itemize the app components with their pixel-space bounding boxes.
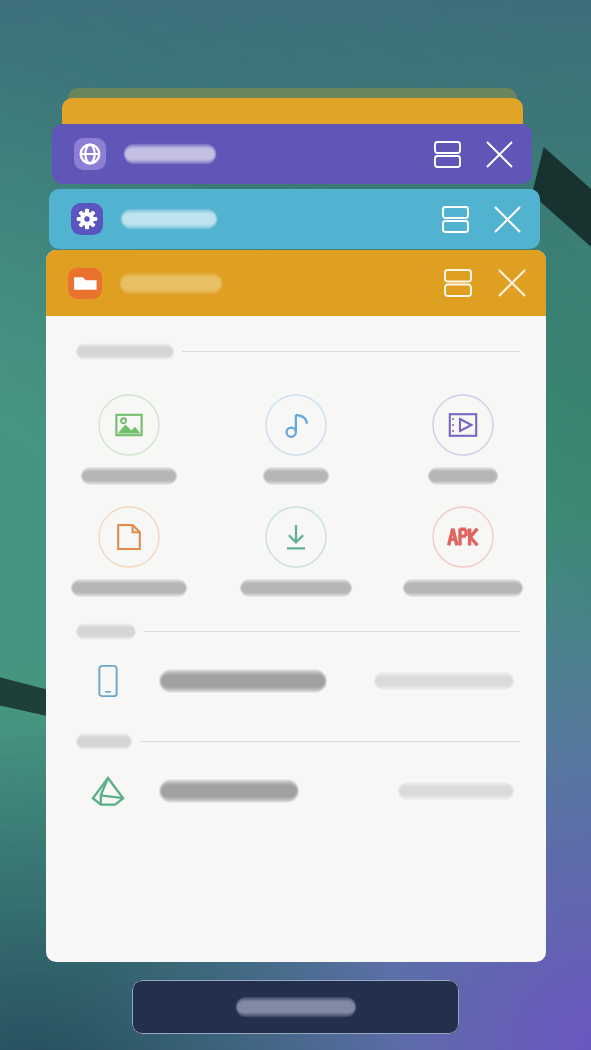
- button[interactable]: [212, 394, 379, 482]
- button[interactable]: Close Internet: [472, 127, 526, 181]
- button[interactable]: Split screen: [49, 189, 540, 249]
- button[interactable]: Close My Files: [484, 255, 540, 311]
- button[interactable]: [46, 646, 546, 716]
- button[interactable]: Split screen: [46, 250, 546, 316]
- button[interactable]: [379, 506, 546, 594]
- button[interactable]: Split screen: [432, 257, 484, 309]
- button[interactable]: [212, 506, 379, 594]
- button[interactable]: [132, 980, 459, 1034]
- button[interactable]: [62, 98, 523, 138]
- button[interactable]: [46, 506, 212, 594]
- button[interactable]: [379, 394, 546, 482]
- button[interactable]: Split screen: [52, 124, 532, 184]
- button[interactable]: Split screen: [430, 194, 480, 244]
- button[interactable]: Close Settings: [480, 192, 534, 246]
- button[interactable]: [46, 394, 212, 482]
- button[interactable]: [68, 88, 517, 128]
- button[interactable]: [46, 756, 546, 826]
- button[interactable]: Split screen: [422, 129, 472, 179]
